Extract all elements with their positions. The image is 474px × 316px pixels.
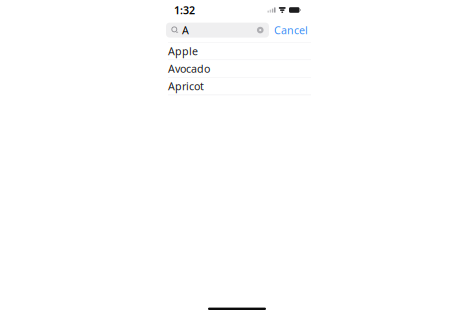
staticText: A [182,23,189,37]
button[interactable]: Apple [163,43,311,60]
button[interactable]: Apricot [163,78,311,95]
staticText: Apple [168,44,198,58]
staticText: Cancel [274,23,308,37]
button[interactable]: Clear text [256,26,264,34]
staticText: 1:32 [174,3,195,17]
staticText: Avocado [168,62,210,76]
button[interactable]: Avocado [163,60,311,77]
button[interactable]: Cancel [274,21,308,39]
staticText: Apricot [168,79,204,93]
